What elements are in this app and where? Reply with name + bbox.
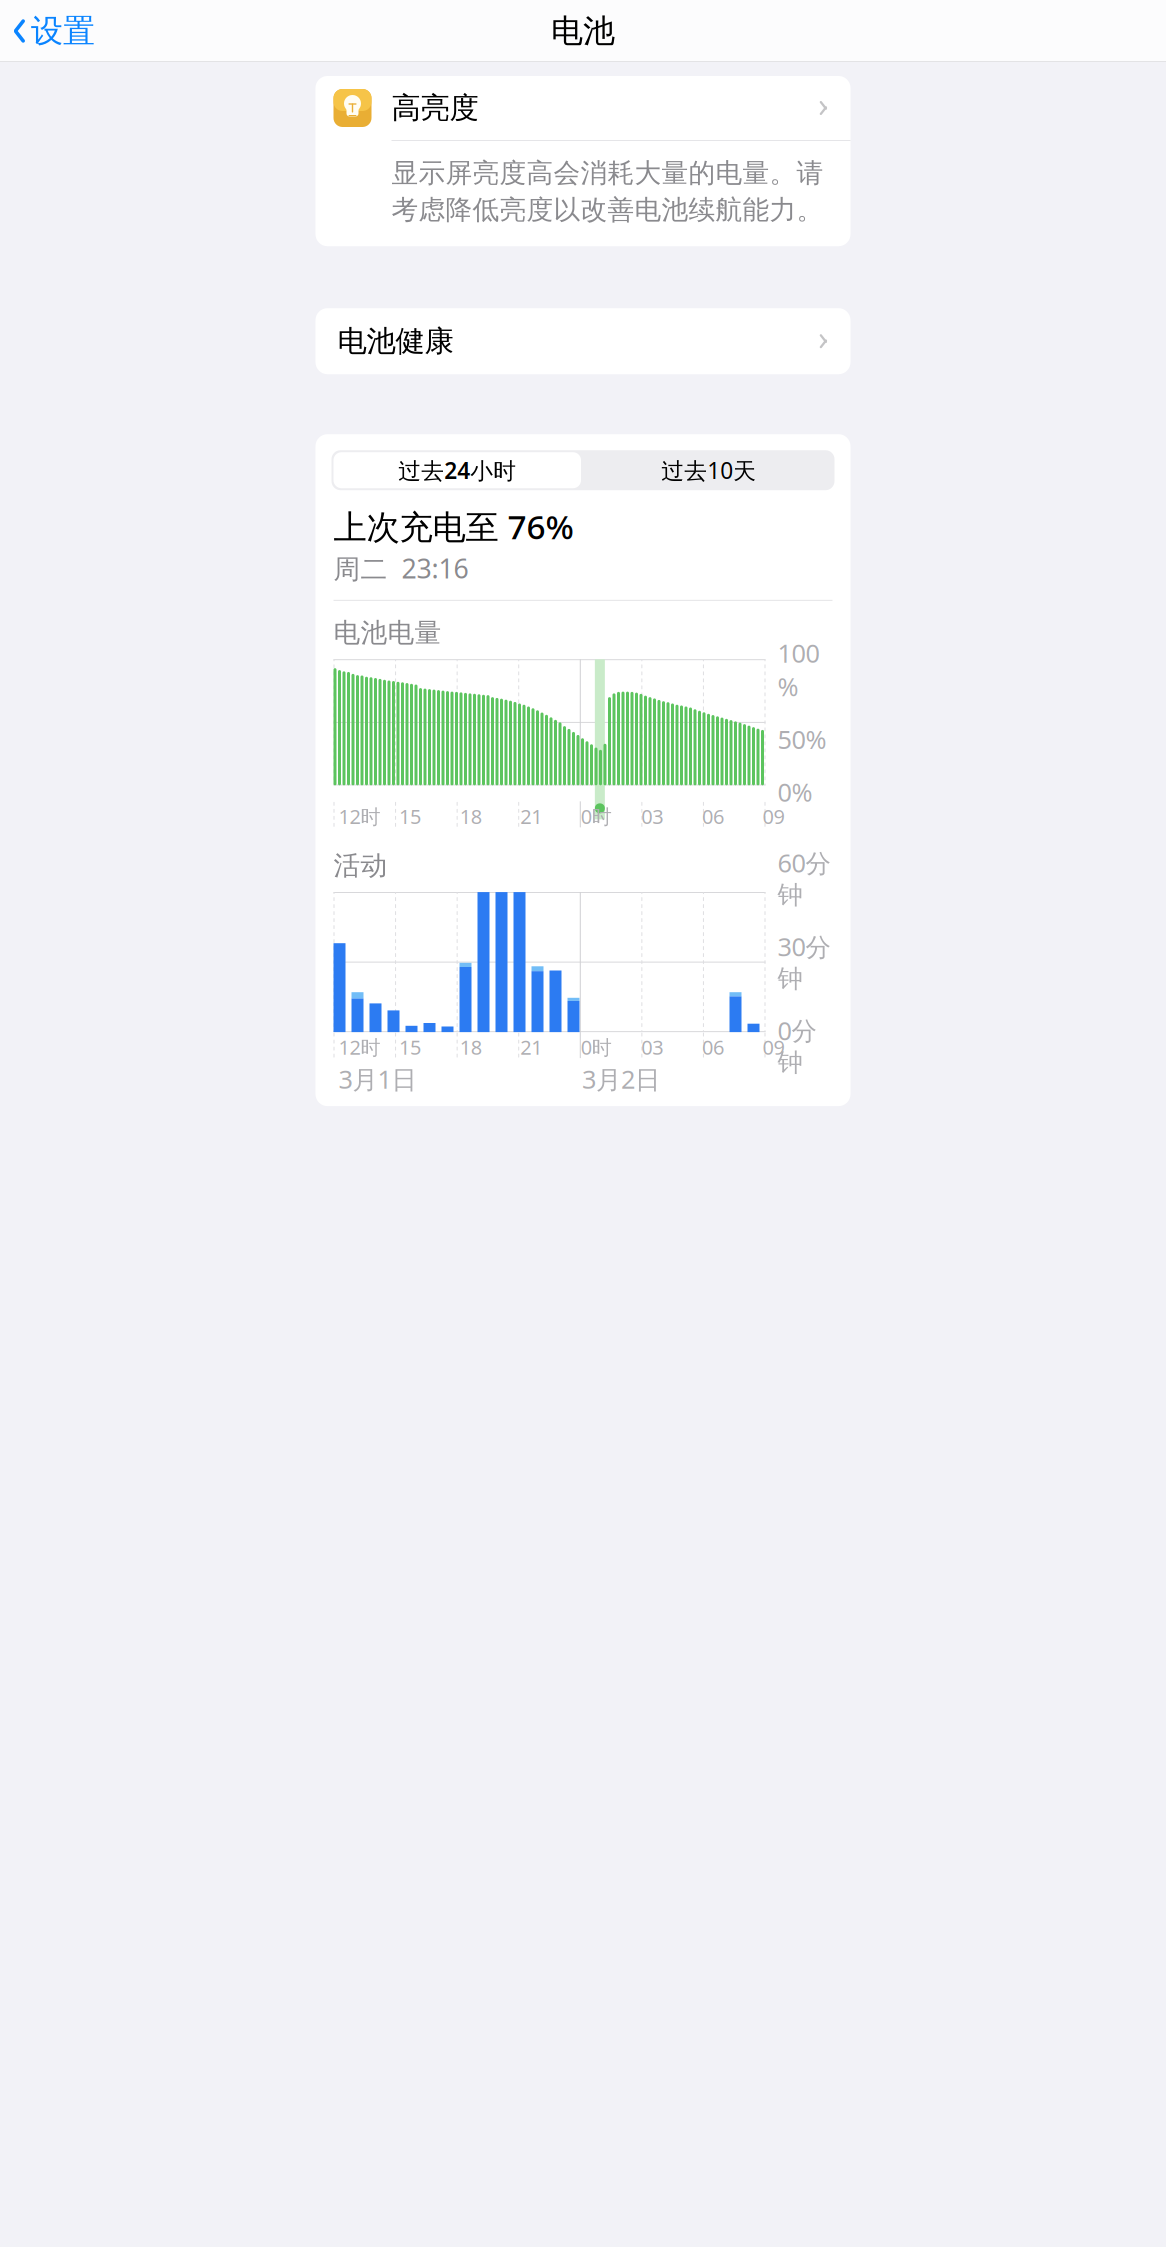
staticText: 0时 — [581, 803, 612, 830]
staticText: 高亮度 — [391, 90, 478, 126]
staticText: 设置 — [31, 11, 95, 51]
staticText: 15 — [399, 803, 421, 830]
staticText: 电池电量 — [333, 617, 441, 649]
staticText: 18 — [460, 803, 482, 830]
button[interactable]: 过去10天 — [583, 450, 834, 490]
staticText: 06 — [702, 803, 724, 830]
staticText: 活动 — [333, 849, 387, 882]
staticText: 06 — [702, 1034, 724, 1060]
staticText: 50% — [777, 722, 826, 756]
staticText: 显示屏亮度高会消耗大量的电量。请 — [391, 157, 823, 189]
staticText: 09 — [762, 803, 784, 830]
staticText: 电池健康 — [337, 323, 453, 359]
button[interactable]: 设置 — [0, 5, 95, 57]
staticText: 上次充电至 76% — [333, 504, 573, 548]
staticText: 0时 — [581, 1034, 612, 1060]
staticText: 0% — [777, 775, 812, 809]
staticText: 03 — [641, 803, 663, 830]
button[interactable]: 过去24小时 — [331, 450, 583, 490]
staticText: 09 — [762, 1034, 784, 1060]
staticText: 电池 — [551, 11, 615, 51]
staticText: 周二 23:16 — [333, 550, 468, 586]
staticText: 3月1日 — [338, 1062, 416, 1096]
staticText: 15 — [399, 1034, 421, 1060]
staticText: 100% — [777, 636, 819, 703]
staticText: 过去10天 — [661, 455, 756, 485]
staticText: 12时 — [338, 1034, 380, 1060]
staticText: 18 — [460, 1034, 482, 1060]
staticText: 3月2日 — [582, 1062, 660, 1096]
staticText: 0分钟 — [777, 1013, 816, 1078]
staticText: 21 — [520, 1034, 542, 1060]
button[interactable]: 电池健康 — [315, 308, 850, 374]
staticText: 03 — [641, 1034, 663, 1060]
staticText: 21 — [520, 803, 542, 830]
button[interactable]: 高亮度 — [315, 76, 850, 140]
staticText: 过去24小时 — [398, 455, 516, 485]
staticText: 30分钟 — [777, 930, 830, 994]
staticText: 60分钟 — [777, 846, 830, 911]
staticText: 考虑降低亮度以改善电池续航能力。 — [391, 193, 823, 226]
staticText: 12时 — [338, 803, 380, 830]
